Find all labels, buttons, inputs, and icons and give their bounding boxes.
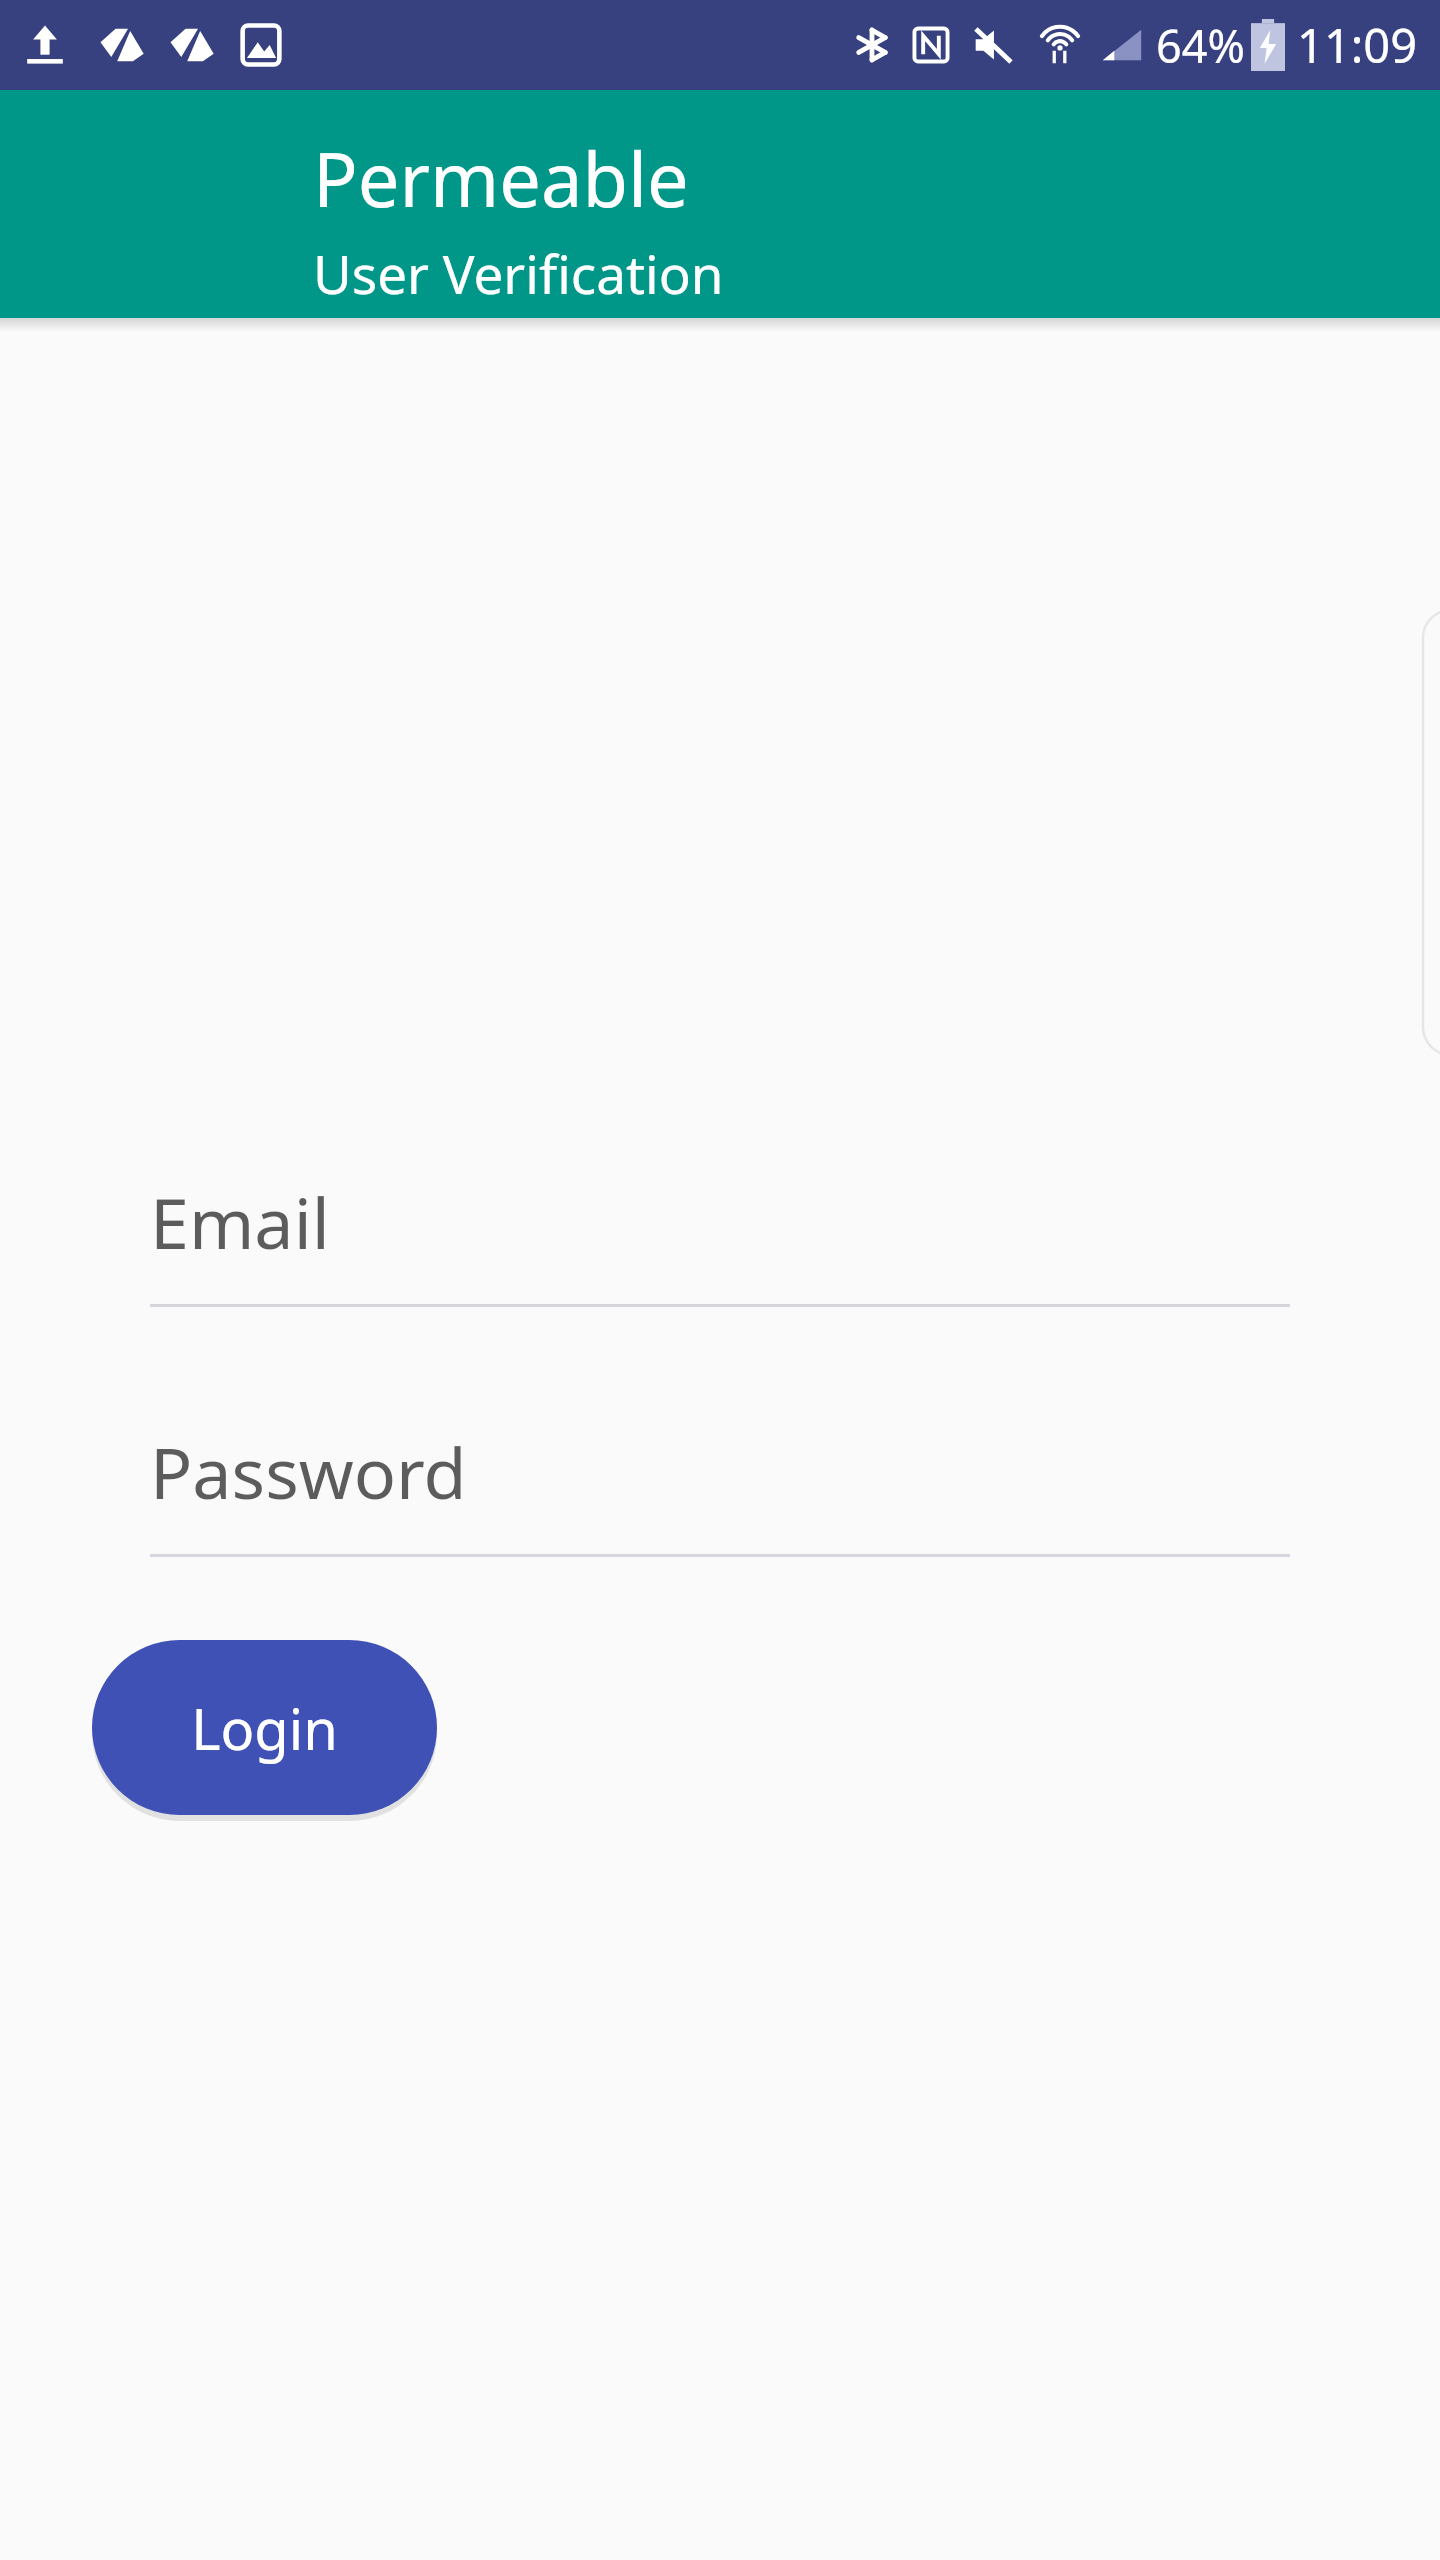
staticText: Login <box>191 1690 338 1766</box>
button[interactable]: Password <box>150 1424 1290 1557</box>
button[interactable]: Email <box>150 1174 1290 1307</box>
staticText: Email <box>150 1174 330 1261</box>
staticText: User Verification <box>313 237 724 309</box>
staticText: 11:09 <box>1297 13 1418 77</box>
staticText: Permeable <box>313 128 689 229</box>
staticText: 64% <box>1156 15 1245 76</box>
staticText: Password <box>150 1424 467 1511</box>
button[interactable]: Login <box>92 1640 437 1815</box>
